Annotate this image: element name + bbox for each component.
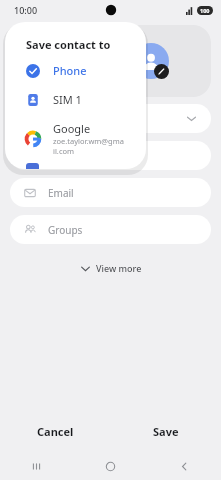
staticText: Phone	[53, 63, 87, 78]
button[interactable]: Phone	[5, 56, 146, 85]
button[interactable]: Edit photo	[133, 43, 169, 79]
button[interactable]: Save	[110, 410, 221, 452]
button[interactable]: Google	[5, 114, 146, 163]
staticText: Save	[153, 424, 179, 439]
button[interactable]	[5, 163, 146, 169]
staticText: SIM 1	[53, 92, 82, 107]
staticText: Google	[53, 121, 91, 136]
staticText: Save contact to	[26, 37, 111, 52]
staticText: zoe.taylor.wm@gmail.com	[53, 136, 125, 156]
button[interactable]: SIM 1	[5, 85, 146, 114]
button[interactable]	[10, 104, 211, 133]
button[interactable]: Phone	[10, 141, 211, 170]
staticText: View more	[96, 262, 142, 274]
staticText: Email	[48, 186, 74, 200]
staticText: Groups	[48, 223, 83, 237]
button[interactable]: Email	[10, 178, 211, 207]
button[interactable]: Recents	[0, 452, 73, 480]
staticText: 10:00	[14, 4, 38, 16]
button[interactable]: Back	[147, 452, 221, 480]
button[interactable]: Groups	[10, 215, 211, 244]
button[interactable]: View more	[0, 256, 221, 280]
staticText: Phone	[48, 149, 79, 163]
button[interactable]: Cancel	[0, 410, 110, 452]
staticText: 100	[200, 7, 210, 14]
staticText: Cancel	[37, 424, 74, 439]
button[interactable]: Home	[73, 452, 147, 480]
